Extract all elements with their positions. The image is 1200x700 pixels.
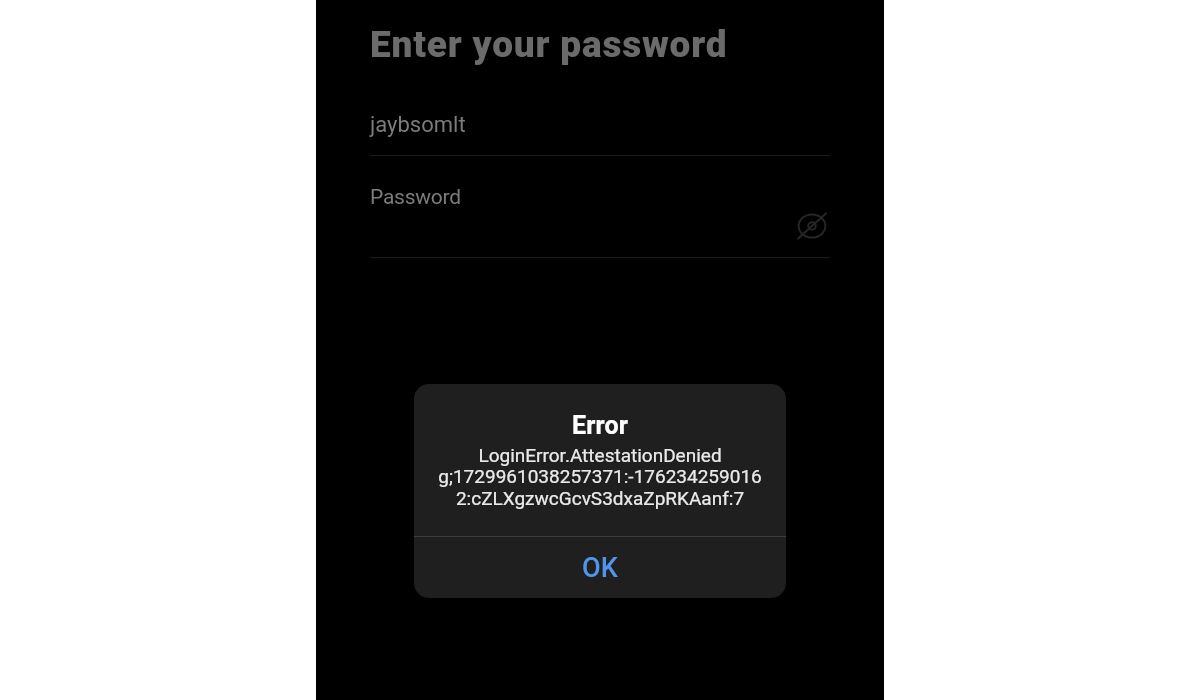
staticText: Error [572,411,629,440]
button[interactable]: Password [370,180,830,258]
staticText: jaybsomlt [370,112,466,138]
staticText: OK [582,552,618,584]
staticText: Enter your password [370,23,728,66]
button[interactable]: Show password [793,207,831,245]
staticText: Password [370,185,461,210]
staticText: LoginError.AttestationDenied g;172996103… [437,444,763,510]
button[interactable]: jaybsomlt [370,100,830,156]
button[interactable]: OK [414,537,786,598]
